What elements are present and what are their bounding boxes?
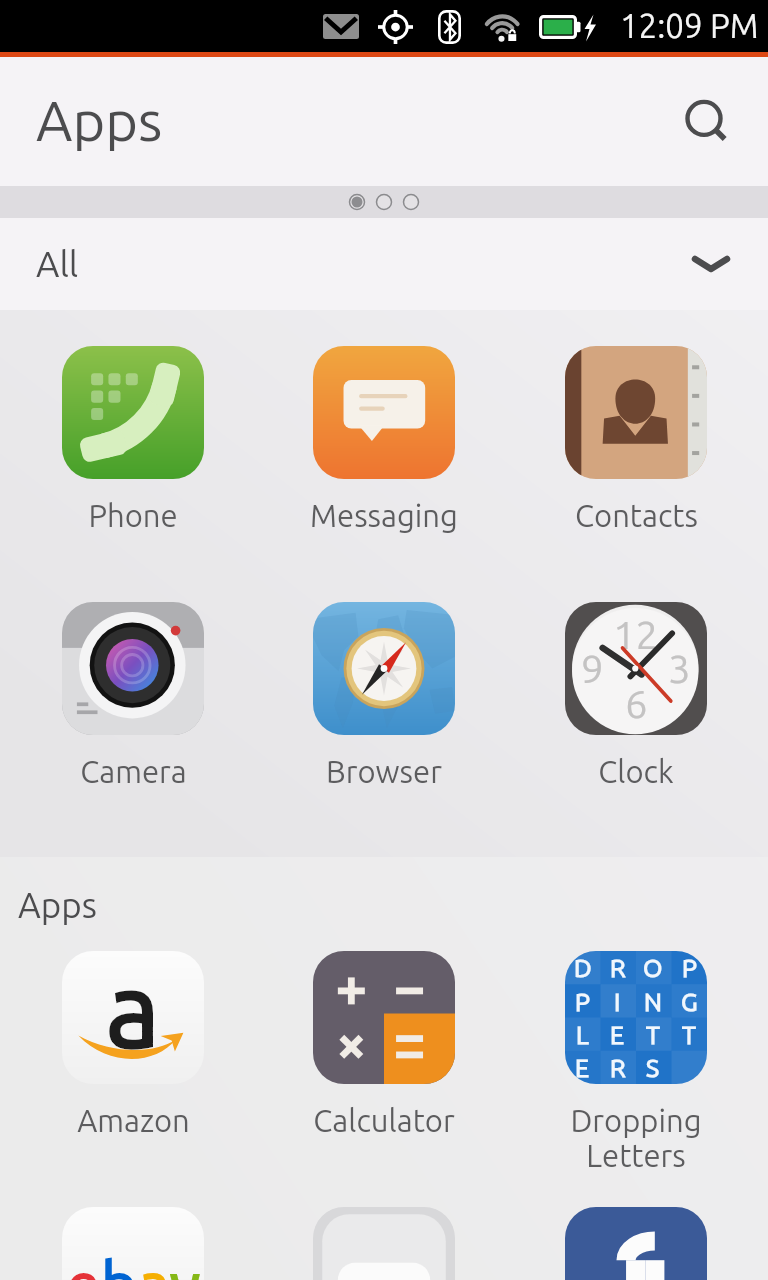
button[interactable]: Search xyxy=(674,92,734,152)
staticText: R xyxy=(610,954,626,982)
staticText: Apps xyxy=(18,885,97,924)
staticText: D xyxy=(574,954,592,982)
button[interactable]: Camera xyxy=(40,602,226,789)
staticText: Phone xyxy=(88,498,178,533)
staticText: Contacts xyxy=(575,498,698,533)
button[interactable]: All xyxy=(0,218,768,310)
staticText: G xyxy=(681,988,698,1016)
staticText: 12:09 PM xyxy=(620,7,759,44)
staticText: E xyxy=(610,1021,625,1049)
staticText: E xyxy=(575,1054,590,1082)
button[interactable]: e xyxy=(40,1207,226,1280)
button[interactable]: Browser xyxy=(291,602,477,789)
staticText: N xyxy=(644,988,662,1016)
staticText: S xyxy=(646,1054,660,1082)
staticText: 3 xyxy=(668,646,691,691)
button[interactable]: Dekko xyxy=(291,1207,477,1280)
staticText: Messaging xyxy=(310,498,458,533)
staticText: 6 xyxy=(625,681,648,726)
staticText: T xyxy=(682,1021,696,1049)
staticText: y xyxy=(170,1249,200,1280)
staticText: O xyxy=(643,954,663,982)
button[interactable]: Contacts xyxy=(543,346,729,533)
staticText: Apps xyxy=(36,89,163,152)
staticText: L xyxy=(576,1021,589,1049)
staticText: a xyxy=(138,1249,170,1280)
button[interactable]: 12 xyxy=(543,602,729,789)
staticText: R xyxy=(610,1054,626,1082)
button[interactable]: Messaging xyxy=(291,346,477,533)
staticText: Amazon xyxy=(77,1103,190,1138)
staticText: 9 xyxy=(581,646,604,691)
staticText: Dropping Letters xyxy=(543,1103,729,1173)
staticText: Browser xyxy=(326,754,442,789)
staticText: e xyxy=(66,1249,101,1280)
staticText: Clock xyxy=(598,754,674,789)
button[interactable]: a xyxy=(40,951,226,1138)
staticText: a xyxy=(106,951,160,1067)
staticText: Calculator xyxy=(313,1103,455,1138)
button[interactable]: Facebook xyxy=(543,1207,729,1280)
staticText: 12 xyxy=(613,612,659,657)
staticText: Camera xyxy=(80,754,187,789)
staticText: I xyxy=(614,988,621,1016)
button[interactable]: D xyxy=(543,951,729,1173)
button[interactable]: Calculator xyxy=(291,951,477,1138)
staticText: All xyxy=(36,243,79,283)
staticText: b xyxy=(101,1249,138,1280)
staticText: P xyxy=(575,988,590,1016)
staticText: T xyxy=(646,1021,660,1049)
staticText: P xyxy=(682,954,697,982)
button[interactable]: Phone xyxy=(40,346,226,533)
